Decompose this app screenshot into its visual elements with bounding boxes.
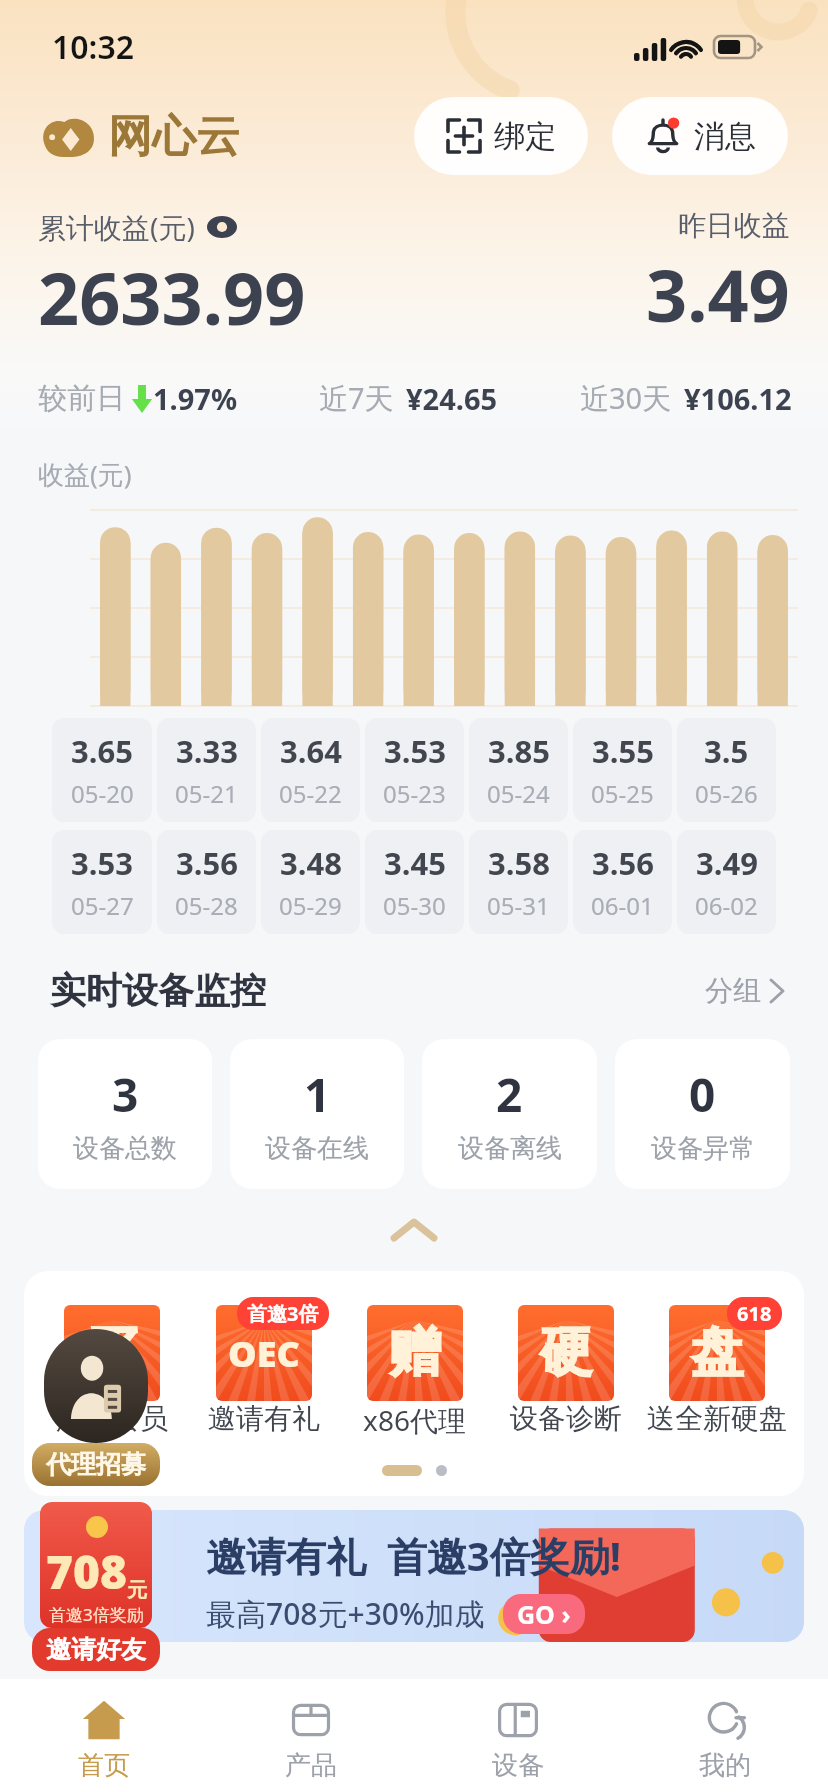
button[interactable]: Collapse section [0, 1189, 828, 1271]
button[interactable]: 3.49 [677, 830, 776, 934]
button[interactable]: 3.55 [573, 718, 672, 822]
staticText: 盘 [691, 1320, 743, 1386]
staticText: 2633.99 [38, 248, 306, 346]
staticText: 消息 [694, 117, 756, 156]
button[interactable]: 3.53 [52, 830, 152, 934]
button[interactable]: 买 [36, 1297, 188, 1436]
button[interactable]: 0 [615, 1039, 790, 1189]
staticText: 3.5 [704, 730, 749, 772]
button[interactable]: 3.65 [52, 718, 152, 822]
staticText: 3.33 [176, 730, 238, 772]
button[interactable]: 分组 [705, 973, 784, 1008]
staticText: 3.48 [280, 842, 342, 884]
staticText: 产品 [285, 1749, 337, 1782]
staticText: 设备异常 [651, 1132, 755, 1165]
staticText: 3.53 [71, 842, 133, 884]
staticText: 绑定 [494, 117, 556, 156]
staticText: 05-31 [487, 889, 550, 922]
button[interactable]: 3.5 [677, 718, 776, 822]
staticText: 3.45 [384, 842, 446, 884]
staticText: 05-29 [279, 889, 342, 922]
button[interactable]: 2 [422, 1039, 597, 1189]
staticText: 05-23 [383, 777, 446, 810]
staticText: 05-21 [175, 777, 238, 810]
staticText: 买 [86, 1320, 138, 1386]
button[interactable]: 3.56 [157, 830, 256, 934]
staticText: OEC [228, 1329, 300, 1378]
button[interactable]: 3.56 [573, 830, 672, 934]
staticText: 超级会员 [56, 1401, 168, 1436]
button[interactable]: 1 [230, 1039, 404, 1189]
staticText: 3.55 [592, 730, 654, 772]
button[interactable]: 累计收益(元) [38, 208, 237, 246]
other: Toggle amount visibility [207, 216, 237, 238]
button[interactable]: 网心云 [40, 107, 240, 165]
staticText: 近7天 [319, 378, 394, 418]
staticText: 3.53 [384, 730, 446, 772]
staticText: 05-28 [175, 889, 238, 922]
button[interactable]: 首页 [0, 1679, 207, 1792]
other: Scan to bind [446, 118, 482, 154]
staticText: 较前日 [38, 380, 125, 417]
staticText: 设备离线 [458, 1132, 562, 1165]
staticText: 3.85 [488, 730, 550, 772]
button[interactable]: 设备 [414, 1679, 621, 1792]
staticText: 3.64 [280, 730, 342, 772]
staticText: 2 [496, 1063, 523, 1126]
button[interactable]: Messages [612, 97, 788, 175]
other: Messages [644, 117, 682, 155]
button[interactable]: 3.58 [469, 830, 568, 934]
staticText: 05-20 [71, 777, 134, 810]
staticText: 累计收益(元) [38, 208, 195, 246]
staticText: 设备总数 [73, 1132, 177, 1165]
staticText: 设备在线 [265, 1132, 369, 1165]
button[interactable]: 3.33 [157, 718, 256, 822]
button[interactable]: 3.53 [365, 718, 464, 822]
button[interactable]: 盘 [641, 1297, 792, 1436]
button[interactable]: 3.85 [469, 718, 568, 822]
button[interactable]: 3.64 [261, 718, 360, 822]
button[interactable]: 硬 [490, 1297, 641, 1436]
button[interactable]: 产品 [207, 1679, 414, 1792]
staticText: 邀请好友 [46, 1634, 146, 1665]
button[interactable]: Scan to bind [414, 97, 588, 175]
staticText: 05-22 [279, 777, 342, 810]
button[interactable]: 3.45 [365, 830, 464, 934]
button[interactable]: 3.48 [261, 830, 360, 934]
button[interactable]: 3 [38, 1039, 212, 1189]
staticText: 邀请有礼 [208, 1401, 320, 1436]
staticText: 05-27 [71, 889, 134, 922]
staticText: 1.97% [153, 379, 238, 418]
staticText: 06-01 [591, 889, 654, 922]
staticText: 设备诊断 [510, 1401, 622, 1436]
staticText: 首邀3倍奖励 [49, 1603, 144, 1626]
staticText: 送全新硬盘 [647, 1401, 787, 1436]
staticText: 我的 [699, 1749, 751, 1782]
staticText: ¥106.12 [684, 379, 792, 418]
staticText: 06-02 [695, 889, 758, 922]
staticText: 元 [127, 1578, 147, 1603]
staticText: 代理招募 [46, 1449, 146, 1480]
button[interactable]: 代理招募 [32, 1329, 160, 1486]
button[interactable]: 赠 [339, 1297, 490, 1439]
staticText: 最高708元+30%加成 [206, 1593, 485, 1634]
staticText: GO › [517, 1597, 571, 1631]
staticText: 1 [304, 1063, 331, 1126]
button[interactable]: 邀请有礼 首邀3倍奖励! [24, 1510, 804, 1642]
staticText: 3.58 [488, 842, 550, 884]
staticText: 3.49 [696, 842, 758, 884]
staticText: x86代理 [363, 1401, 466, 1439]
staticText: 3.56 [176, 842, 238, 884]
staticText: 708 [46, 1540, 127, 1603]
staticText: 首邀3倍 [247, 1300, 319, 1327]
staticText: 收益(元) [38, 456, 132, 492]
staticText: 硬 [540, 1320, 592, 1386]
staticText: 3 [112, 1063, 139, 1126]
button[interactable]: 我的 [621, 1679, 828, 1792]
staticText: ¥24.65 [406, 379, 498, 418]
staticText: 邀请有礼 首邀3倍奖励! [206, 1528, 621, 1583]
button[interactable]: OEC [188, 1297, 339, 1436]
staticText: 618 [737, 1300, 772, 1327]
staticText: 05-24 [487, 777, 550, 810]
staticText: 赠 [389, 1320, 441, 1386]
